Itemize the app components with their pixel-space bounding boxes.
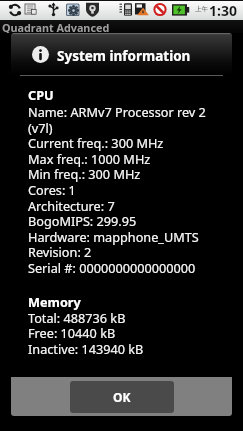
- staticText: CPU: [28, 86, 54, 103]
- staticText: Cores: 1: [28, 181, 76, 198]
- staticText: Serial #: 0000000000000000: [28, 259, 196, 276]
- staticText: BogoMIPS: 299.95: [28, 212, 137, 229]
- button[interactable]: OK: [70, 381, 174, 413]
- staticText: Max freq.: 1000 MHz: [28, 150, 151, 167]
- staticText: Quadrant Advanced: [2, 20, 110, 33]
- staticText: Revision: 2: [28, 243, 92, 260]
- staticText: 1:30: [209, 1, 237, 20]
- staticText: Current freq.: 300 MHz: [28, 134, 164, 151]
- staticText: OK: [113, 389, 131, 405]
- staticText: 上午: [195, 5, 208, 13]
- staticText: Memory: [28, 293, 81, 310]
- staticText: Min freq.: 300 MHz: [28, 165, 141, 182]
- staticText: Inactive: 143940 kB: [28, 340, 144, 357]
- staticText: System information: [57, 47, 191, 65]
- staticText: Hardware: mapphone_UMTS: [28, 228, 199, 245]
- staticText: Total: 488736 kB: [28, 309, 126, 326]
- staticText: Free: 10440 kB: [28, 324, 116, 341]
- staticText: (v7l): [28, 119, 53, 136]
- staticText: Architecture: 7: [28, 197, 115, 214]
- staticText: Name: ARMv7 Processor rev 2: [28, 103, 206, 120]
